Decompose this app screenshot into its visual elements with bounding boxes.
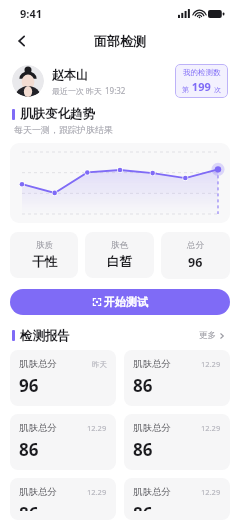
staticText: 第	[182, 85, 189, 94]
staticText: 199	[189, 79, 214, 94]
staticText: 检测报告	[20, 328, 70, 344]
staticText: 19:32	[105, 85, 126, 96]
staticText: 12.29	[201, 359, 221, 369]
staticText: 肌肤总分	[19, 358, 57, 370]
button[interactable]: 肌肤总分	[10, 350, 116, 406]
button[interactable]: 开始测试	[10, 289, 230, 315]
staticText: 12.29	[201, 487, 221, 497]
staticText: 昨天	[92, 360, 107, 369]
staticText: 赵本山	[52, 67, 88, 82]
staticText: 最近一次 昨天	[52, 85, 105, 96]
staticText: 肤质	[36, 240, 53, 251]
staticText: 更多	[199, 330, 216, 341]
staticText: 肌肤总分	[133, 358, 171, 370]
button[interactable]: 肤色	[85, 232, 154, 278]
staticText: 肌肤总分	[19, 486, 57, 498]
staticText: 总分	[187, 240, 204, 251]
button[interactable]: 总分	[161, 232, 230, 279]
staticText: 肌肤总分	[133, 422, 171, 434]
button[interactable]: 肤质	[10, 232, 78, 278]
staticText: 96	[19, 374, 39, 397]
button[interactable]: 肌肤总分	[124, 478, 230, 520]
staticText: 干性	[32, 254, 57, 270]
button[interactable]: 肌肤总分	[124, 414, 230, 470]
staticText: 我的检测数	[183, 68, 221, 77]
staticText: 肌肤总分	[19, 422, 57, 434]
staticText: 肌肤变化趋势	[20, 106, 95, 122]
staticText: 每天一测，跟踪护肤结果	[14, 124, 113, 135]
staticText: 86	[19, 438, 39, 461]
button[interactable]: 肌肤总分	[10, 478, 116, 520]
staticText: 开始测试	[104, 295, 148, 309]
button[interactable]: Back	[8, 27, 36, 55]
staticText: 86	[19, 502, 39, 511]
staticText: 面部检测	[94, 33, 146, 49]
staticText: 86	[133, 438, 153, 461]
staticText: 86	[133, 502, 153, 511]
staticText: 12.29	[87, 423, 107, 433]
staticText: 96	[188, 254, 203, 271]
button[interactable]: 更多	[196, 327, 228, 344]
staticText: 白皙	[107, 254, 132, 270]
button[interactable]: 肌肤总分	[124, 350, 230, 406]
staticText: 12.29	[87, 487, 107, 497]
staticText: 12.29	[201, 423, 221, 433]
staticText: 肌肤总分	[133, 486, 171, 498]
staticText: 肤色	[111, 240, 128, 251]
button[interactable]: 我的检测数	[175, 64, 228, 98]
staticText: 86	[133, 374, 153, 397]
staticText: 9:41	[20, 6, 42, 21]
staticText: 次	[214, 85, 221, 94]
button[interactable]: 肌肤总分	[10, 414, 116, 470]
